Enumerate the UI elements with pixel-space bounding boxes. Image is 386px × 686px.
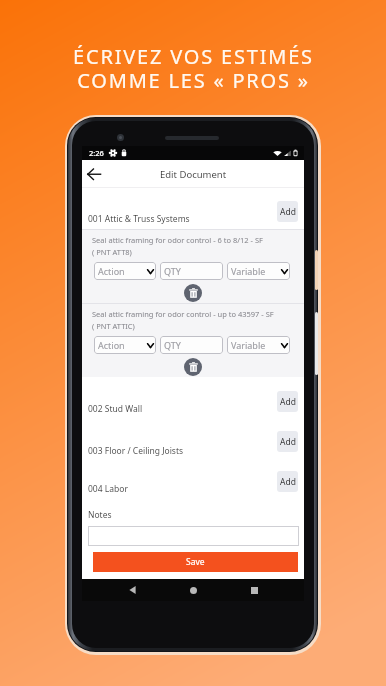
button[interactable]: Add — [277, 201, 298, 222]
staticText: Edit Document — [160, 168, 227, 181]
button[interactable]: Delete — [184, 284, 202, 302]
button[interactable]: Back — [83, 163, 105, 185]
staticText: ÉCRIVEZ VOS ESTIMÉS — [73, 43, 314, 70]
button[interactable]: Action — [94, 336, 156, 354]
staticText: 003 Floor / Ceiling Joists — [88, 445, 184, 457]
staticText: 002 Stud Wall — [88, 403, 143, 415]
staticText: Add — [280, 436, 296, 448]
button[interactable]: Delete — [184, 358, 202, 376]
staticText: QTY — [164, 339, 181, 351]
button[interactable]: Add — [277, 431, 298, 452]
staticText: Action — [98, 265, 125, 277]
staticText: 2:26 — [89, 148, 104, 158]
button[interactable]: Variable — [227, 336, 290, 354]
button[interactable] — [88, 526, 299, 546]
button[interactable]: Variable — [227, 262, 290, 280]
button[interactable]: QTY — [160, 336, 223, 354]
button[interactable]: Add — [277, 471, 298, 492]
staticText: Seal attic framing for odor control - 6 … — [92, 235, 263, 245]
staticText: QTY — [164, 265, 181, 277]
staticText: Add — [280, 206, 296, 218]
button[interactable]: Save — [93, 552, 298, 572]
staticText: Add — [280, 396, 296, 408]
staticText: ( PNT ATT8) — [92, 247, 132, 257]
staticText: Seal attic framing for odor control - up… — [92, 309, 274, 319]
staticText: Action — [98, 339, 125, 351]
staticText: ( PNT ATTIC) — [92, 321, 135, 331]
staticText: Variable — [231, 339, 266, 351]
button[interactable]: QTY — [160, 262, 223, 280]
button[interactable]: Home — [182, 579, 204, 601]
button[interactable]: Back — [121, 579, 143, 601]
button[interactable]: Recents — [243, 579, 265, 601]
staticText: 001 Attic & Truss Systems — [88, 213, 190, 225]
staticText: Variable — [231, 265, 266, 277]
button[interactable]: Action — [94, 262, 156, 280]
button[interactable]: Add — [277, 391, 298, 412]
staticText: 004 Labor — [88, 483, 128, 495]
staticText: Add — [280, 476, 296, 488]
staticText: Notes — [88, 509, 112, 521]
staticText: COMME LES « PROS » — [77, 67, 310, 94]
staticText: Save — [186, 556, 205, 568]
